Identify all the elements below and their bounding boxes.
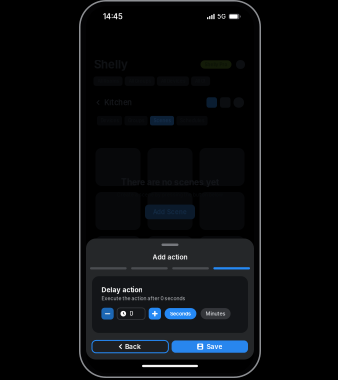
staticText: Save — [206, 343, 222, 351]
staticText: Back — [125, 343, 141, 351]
staticText: 14:45 — [103, 12, 123, 21]
button[interactable]: Back — [92, 340, 168, 353]
staticText: There are no scenes yet — [121, 177, 219, 187]
staticText: Execute the action after 0 seconds — [101, 295, 185, 301]
staticText: Create a scene by pressing the button be… — [117, 192, 223, 198]
button[interactable]: Minutes — [201, 308, 231, 319]
staticText: Add action — [152, 253, 187, 261]
button[interactable]: Increase delay — [149, 308, 161, 320]
staticText: 0 — [129, 310, 133, 317]
staticText: Kitchen — [104, 98, 132, 107]
button[interactable]: Decrease delay — [101, 308, 114, 320]
staticText: Minutes — [206, 310, 226, 317]
button[interactable]: Seconds — [165, 308, 196, 319]
staticText: Shelly — [94, 58, 128, 71]
staticText: 5G — [217, 13, 226, 20]
staticText: Seconds — [170, 310, 191, 317]
staticText: Scenes — [153, 118, 170, 123]
staticText: Add Scene — [153, 208, 187, 216]
staticText: Delay action — [101, 286, 142, 294]
button[interactable]: Save — [172, 340, 248, 353]
